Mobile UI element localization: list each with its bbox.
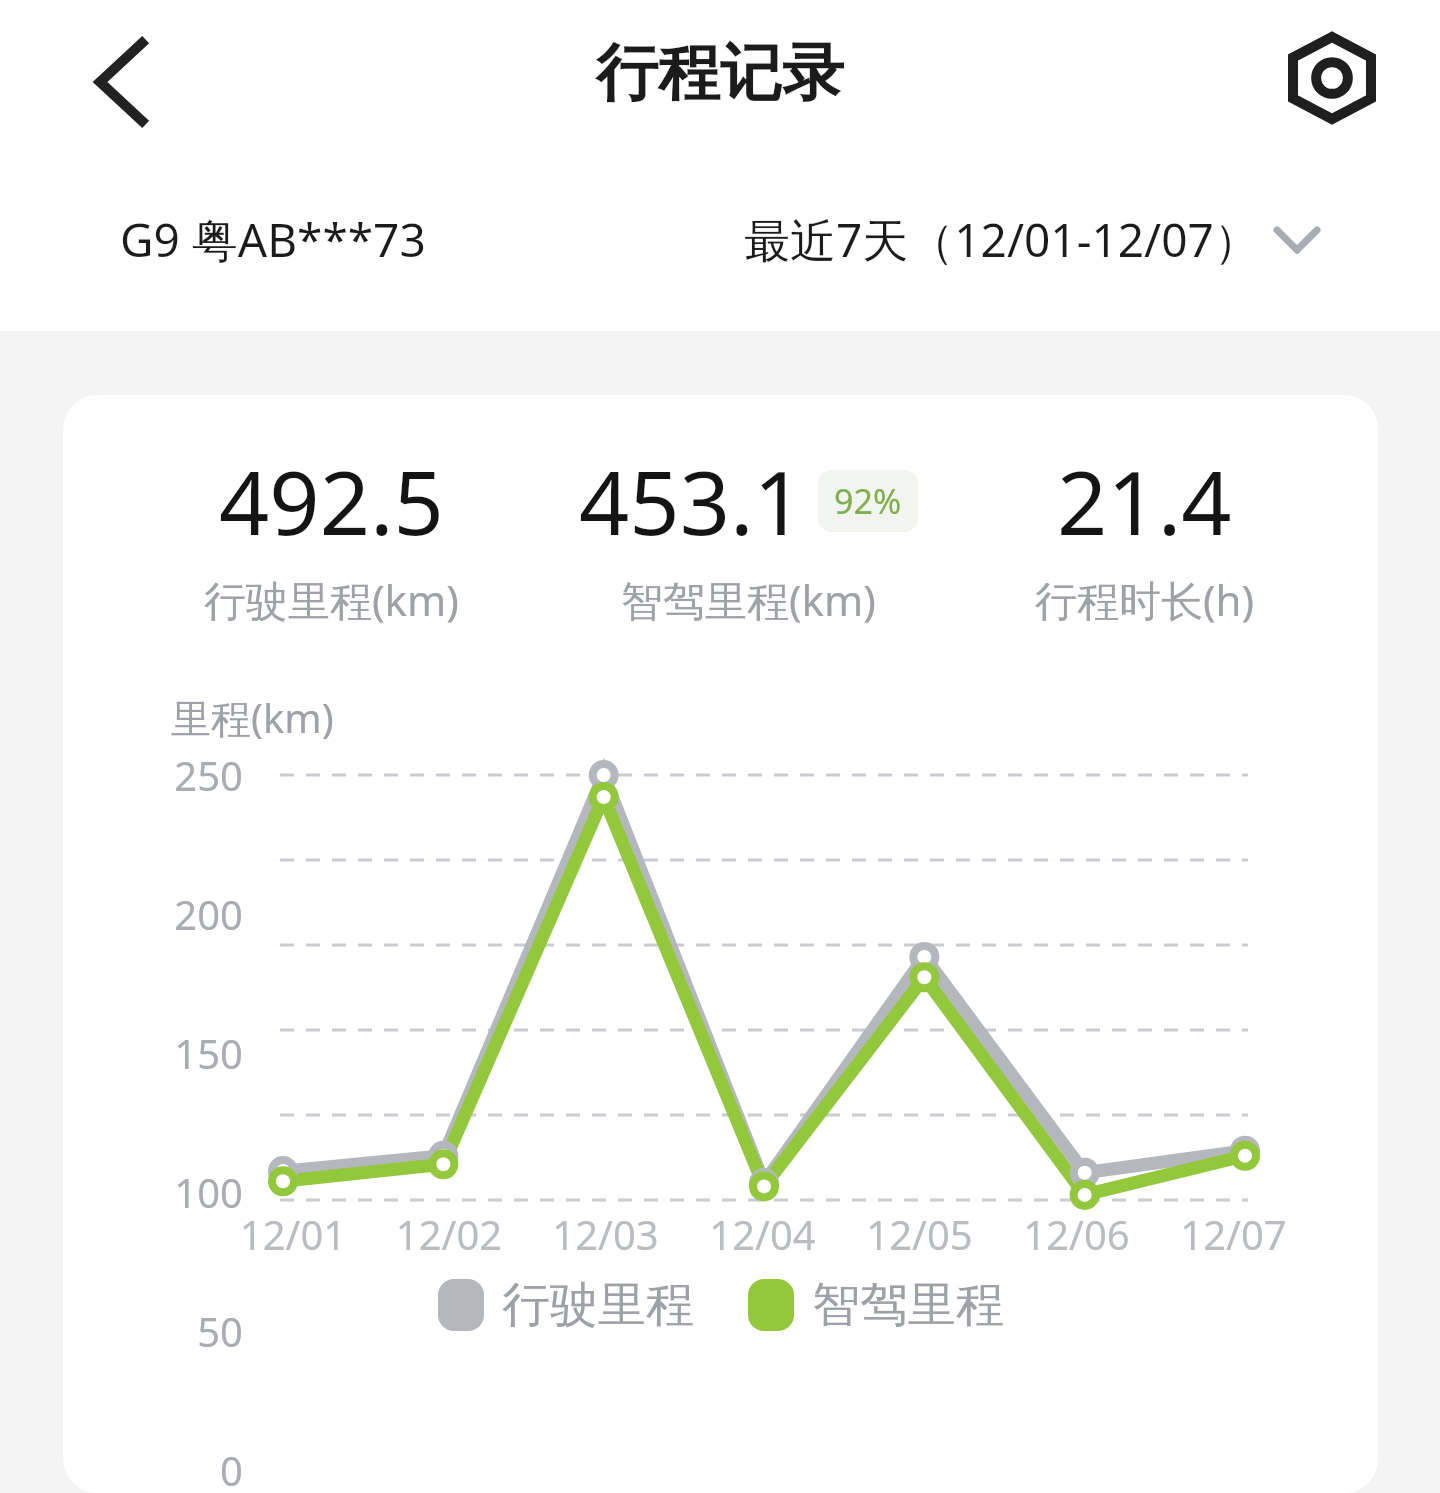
button[interactable]: G9 粤AB***73: [120, 208, 426, 271]
staticText: 250: [103, 748, 243, 802]
staticText: 12/05: [841, 1207, 998, 1261]
button[interactable]: 智驾里程: [748, 1275, 1004, 1335]
staticText: 492.5: [219, 441, 444, 561]
staticText: 最近7天（12/01-12/07）: [744, 208, 1260, 271]
staticText: 12/01: [215, 1207, 371, 1261]
staticText: 里程(km): [171, 690, 334, 745]
staticText: 12/03: [527, 1207, 684, 1261]
staticText: 50: [103, 1304, 243, 1358]
staticText: 行驶里程: [502, 1275, 694, 1335]
staticText: 智驾里程(km): [621, 571, 876, 628]
staticText: 0: [103, 1443, 243, 1493]
staticText: 行程记录: [596, 34, 844, 112]
button[interactable]: 行驶里程: [438, 1275, 694, 1335]
staticText: 行程时长(h): [1035, 571, 1255, 628]
button[interactable]: Back: [60, 22, 180, 142]
staticText: 200: [103, 887, 243, 941]
staticText: 100: [103, 1165, 243, 1219]
staticText: 12/02: [371, 1207, 527, 1261]
staticText: 21.4: [1057, 441, 1232, 561]
staticText: 12/06: [998, 1207, 1155, 1261]
staticText: 12/07: [1155, 1207, 1312, 1261]
staticText: 92%: [834, 478, 902, 524]
button[interactable]: 最近7天（12/01-12/07）: [744, 208, 1320, 271]
staticText: 150: [103, 1026, 243, 1080]
staticText: 453.1: [579, 441, 804, 561]
staticText: 行驶里程(km): [204, 571, 459, 628]
staticText: 12/04: [684, 1207, 841, 1261]
staticText: 智驾里程: [812, 1275, 1004, 1335]
button[interactable]: Settings: [1272, 18, 1392, 138]
